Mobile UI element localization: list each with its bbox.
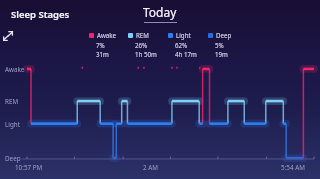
staticText: 2 AM	[143, 163, 158, 172]
staticText: 62%	[175, 41, 188, 49]
button[interactable]	[0, 60, 320, 179]
staticText: 4h 17m	[175, 50, 197, 58]
staticText: REM	[5, 97, 19, 106]
staticText: Sleep Stages	[11, 8, 70, 21]
staticText: 5:54 AM	[281, 163, 305, 172]
staticText: Today	[143, 4, 177, 20]
staticText: 31m	[96, 50, 109, 58]
staticText: Awake	[97, 31, 117, 39]
button[interactable]: Expand chart	[0, 28, 16, 44]
button[interactable]: Today	[143, 4, 177, 23]
staticText: Light	[176, 31, 191, 39]
staticText: 26%	[135, 41, 148, 49]
staticText: 19m	[215, 50, 228, 58]
staticText: Light	[5, 120, 20, 129]
staticText: REM	[136, 31, 149, 39]
staticText: Deep	[216, 31, 232, 39]
staticText: Deep	[5, 154, 21, 163]
button[interactable]: Light	[168, 31, 197, 58]
staticText: 10:57 PM	[15, 163, 43, 172]
button[interactable]: Awake	[89, 31, 117, 58]
button[interactable]: REM	[128, 31, 157, 58]
staticText: 5%	[215, 41, 224, 49]
staticText: 7%	[96, 41, 105, 49]
staticText: Awake	[5, 65, 25, 74]
button[interactable]: Deep	[208, 31, 232, 58]
staticText: 1h 50m	[135, 50, 157, 58]
